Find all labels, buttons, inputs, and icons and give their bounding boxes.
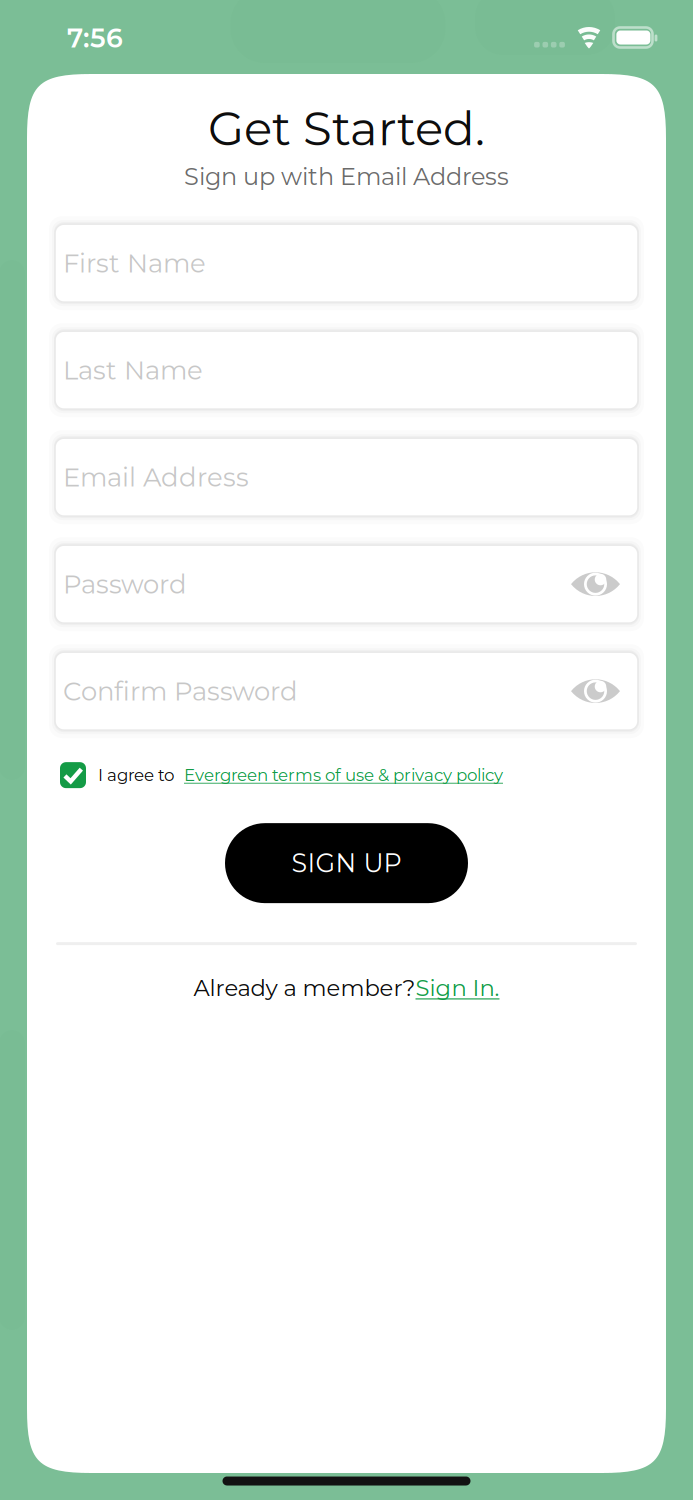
button[interactable]: Email Address bbox=[55, 438, 638, 516]
button[interactable]: SIGN UP bbox=[225, 823, 468, 903]
staticText: Evergreen terms of use & privacy policy bbox=[184, 765, 503, 785]
staticText: SIGN UP bbox=[291, 848, 401, 879]
button[interactable]: Last Name bbox=[55, 331, 638, 409]
button[interactable]: First Name bbox=[55, 224, 638, 302]
staticText: Already a member? bbox=[193, 974, 415, 1002]
staticText: Sign up with Email Address bbox=[184, 162, 509, 191]
button[interactable]: Sign In. bbox=[415, 974, 499, 1002]
staticText: Confirm Password bbox=[63, 675, 298, 707]
staticText: 7:56 bbox=[67, 22, 123, 54]
button[interactable]: Confirm Password bbox=[55, 652, 638, 730]
staticText: Email Address bbox=[63, 461, 249, 493]
staticText: Sign In. bbox=[415, 974, 499, 1002]
staticText: First Name bbox=[63, 247, 206, 279]
staticText: Last Name bbox=[63, 354, 203, 386]
button[interactable]: I agree to the terms bbox=[60, 762, 86, 788]
staticText: Get Started. bbox=[208, 100, 485, 157]
button[interactable]: Password bbox=[55, 545, 638, 623]
staticText: I agree to bbox=[98, 765, 174, 785]
button[interactable]: Evergreen terms of use & privacy policy bbox=[174, 765, 503, 785]
staticText: Password bbox=[63, 568, 187, 600]
